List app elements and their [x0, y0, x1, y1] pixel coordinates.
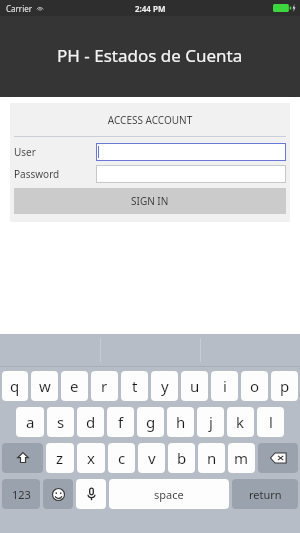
staticText: 2:44 PM: [135, 3, 166, 14]
button[interactable]: z: [46, 443, 74, 473]
staticText: PH - Estados de Cuenta: [57, 44, 243, 67]
button[interactable]: t: [121, 371, 148, 401]
staticText: User: [14, 145, 96, 159]
button[interactable]: Dictation: [76, 479, 106, 509]
staticText: d: [86, 412, 96, 432]
staticText: w: [39, 376, 51, 396]
button[interactable]: u: [181, 371, 208, 401]
staticText: c: [118, 448, 126, 468]
staticText: space: [154, 487, 184, 502]
staticText: z: [56, 448, 64, 468]
button[interactable]: SIGN IN: [14, 188, 286, 214]
button[interactable]: Emoji: [43, 479, 73, 509]
button[interactable]: 123: [2, 479, 40, 509]
button[interactable]: a: [16, 407, 44, 437]
button[interactable]: v: [138, 443, 165, 473]
button[interactable]: x: [77, 443, 105, 473]
staticText: m: [234, 448, 249, 468]
button[interactable]: o: [241, 371, 268, 401]
staticText: n: [207, 448, 217, 468]
staticText: ACCESS ACCOUNT: [10, 113, 290, 127]
staticText: return: [249, 487, 282, 502]
staticText: t: [132, 376, 138, 396]
staticText: y: [161, 376, 169, 396]
button[interactable]: Backspace: [258, 443, 298, 473]
staticText: l: [269, 412, 273, 432]
staticText: 123: [12, 487, 31, 502]
staticText: r: [101, 376, 108, 396]
staticText: g: [146, 412, 156, 432]
button[interactable]: [96, 165, 286, 183]
button[interactable]: q: [2, 371, 28, 401]
staticText: i: [223, 376, 227, 396]
button[interactable]: Shift: [2, 443, 43, 473]
button[interactable]: j: [197, 407, 224, 437]
staticText: b: [177, 448, 187, 468]
staticText: u: [190, 376, 200, 396]
button[interactable]: m: [228, 443, 255, 473]
button[interactable]: e: [61, 371, 88, 401]
button[interactable]: k: [227, 407, 254, 437]
staticText: k: [236, 412, 245, 432]
staticText: a: [26, 412, 35, 432]
button[interactable]: w: [31, 371, 58, 401]
button[interactable]: n: [198, 443, 225, 473]
button[interactable]: [96, 143, 286, 161]
staticText: Password: [14, 167, 96, 181]
button[interactable]: c: [108, 443, 135, 473]
staticText: e: [70, 376, 79, 396]
button[interactable]: f: [107, 407, 134, 437]
button[interactable]: b: [168, 443, 195, 473]
staticText: f: [118, 412, 124, 432]
staticText: p: [280, 376, 290, 396]
staticText: j: [209, 412, 213, 432]
staticText: o: [250, 376, 260, 396]
button[interactable]: g: [137, 407, 164, 437]
button[interactable]: space: [109, 479, 229, 509]
staticText: v: [148, 448, 156, 468]
staticText: s: [57, 412, 65, 432]
staticText: Carrier: [6, 3, 33, 14]
button[interactable]: y: [151, 371, 178, 401]
button[interactable]: i: [211, 371, 238, 401]
button[interactable]: p: [271, 371, 298, 401]
staticText: x: [87, 448, 95, 468]
staticText: q: [10, 376, 20, 396]
staticText: SIGN IN: [131, 194, 169, 208]
button[interactable]: r: [91, 371, 118, 401]
staticText: h: [176, 412, 186, 432]
button[interactable]: d: [77, 407, 104, 437]
button[interactable]: l: [257, 407, 284, 437]
button[interactable]: return: [232, 479, 298, 509]
button[interactable]: s: [47, 407, 74, 437]
button[interactable]: h: [167, 407, 194, 437]
